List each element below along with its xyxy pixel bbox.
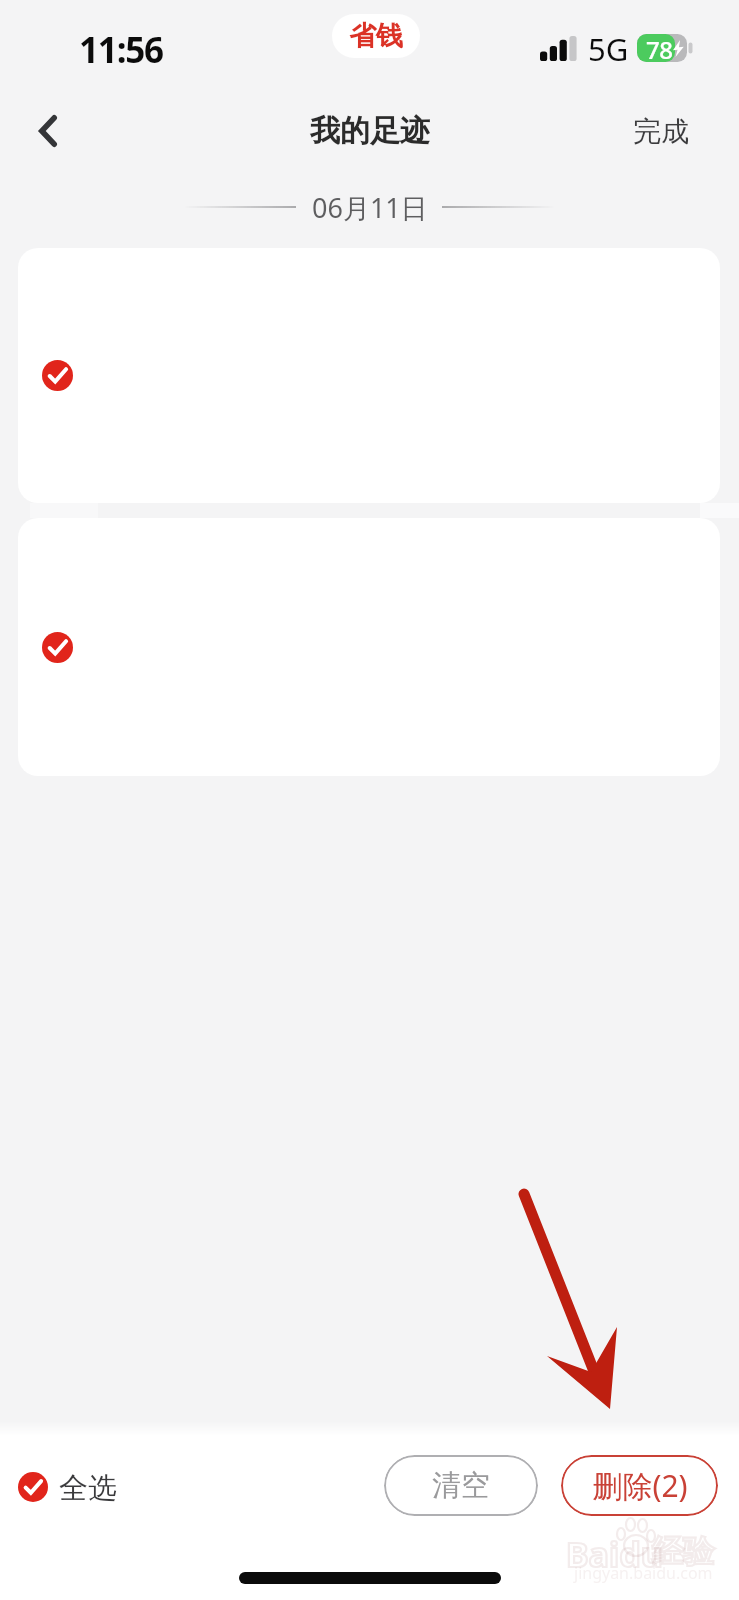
staticText: 06月11日: [312, 189, 428, 226]
button[interactable]: 完成: [618, 104, 704, 158]
staticText: 完成: [633, 114, 689, 149]
button[interactable]: Selected, toggle selection: [18, 518, 720, 776]
staticText: 清空: [432, 1467, 490, 1504]
button[interactable]: Back: [21, 100, 79, 158]
button[interactable]: Selected, toggle selection: [18, 248, 720, 503]
staticText: 删除(2): [592, 1465, 688, 1506]
button[interactable]: 全选: [8, 1464, 127, 1510]
staticText: 全选: [59, 1470, 117, 1507]
staticText: Baidu: [566, 1531, 663, 1577]
staticText: 78: [646, 33, 673, 61]
staticText: 5G: [588, 28, 629, 70]
staticText: 我的足迹: [310, 112, 430, 150]
staticText: 经验: [652, 1532, 714, 1571]
button[interactable]: Selected, toggle selection: [42, 360, 73, 391]
staticText: 省钱: [349, 19, 403, 53]
button[interactable]: 清空: [384, 1455, 538, 1516]
staticText: jingyan.baidu.com: [574, 1562, 713, 1584]
button[interactable]: 删除(2): [561, 1455, 718, 1516]
button[interactable]: Selected, toggle selection: [42, 632, 73, 663]
staticText: 11:56: [79, 26, 163, 74]
